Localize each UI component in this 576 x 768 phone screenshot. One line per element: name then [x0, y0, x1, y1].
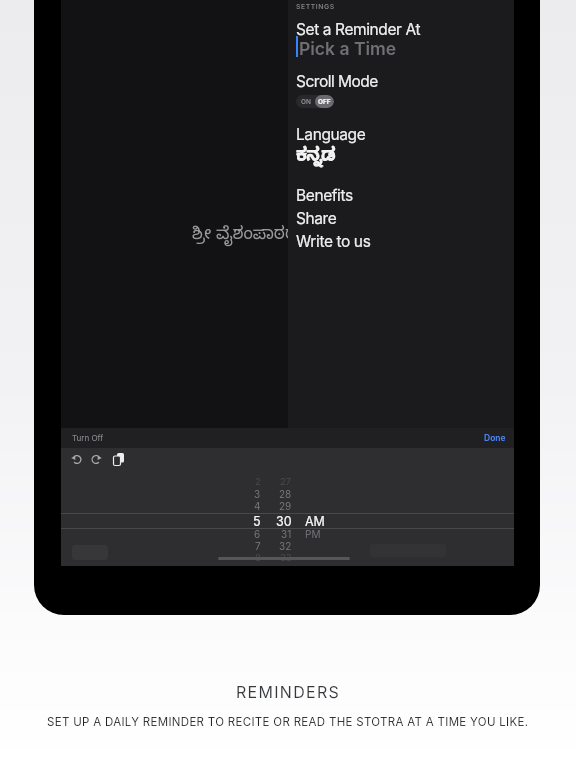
staticText: Set a Reminder At [296, 20, 421, 39]
button[interactable]: Pick a Time [299, 38, 397, 59]
staticText: 5 [253, 514, 261, 529]
staticText: 27 [280, 476, 292, 487]
staticText: 8 [255, 552, 261, 563]
staticText: ಕನ್ನಡ [296, 145, 335, 169]
staticText: Done [484, 433, 506, 443]
staticText: OFF [318, 98, 331, 106]
staticText: SETTINGS [296, 2, 335, 10]
staticText: 30 [276, 514, 292, 529]
staticText: 4 [254, 500, 261, 512]
staticText: SET UP A DAILY REMINDER TO RECITE OR REA… [47, 715, 529, 729]
button[interactable] [67, 451, 137, 471]
staticText: 2 [255, 476, 261, 487]
staticText: 33 [280, 552, 292, 563]
button[interactable]: Write to us [296, 232, 371, 251]
button[interactable]: Done [484, 428, 506, 448]
button[interactable]: Share [296, 209, 337, 228]
staticText: 7 [255, 540, 261, 552]
staticText: PM [305, 528, 321, 540]
staticText: 28 [279, 488, 292, 500]
staticText: 6 [254, 528, 261, 540]
staticText: 31 [281, 528, 292, 540]
staticText: Language [296, 125, 366, 144]
staticText: ON [301, 98, 311, 106]
staticText: ಕನ್ನಡ [296, 146, 335, 170]
staticText: REMINDERS [236, 682, 341, 701]
button[interactable]: Benefits [296, 186, 353, 205]
staticText: AM [305, 514, 325, 529]
staticText: ಕನ್ನಡ [297, 145, 336, 169]
staticText: Turn Off [72, 433, 104, 443]
button[interactable]: Turn Off [72, 428, 104, 448]
staticText: 32 [279, 540, 292, 552]
staticText: 29 [279, 500, 292, 512]
staticText: Scroll Mode [296, 72, 378, 91]
staticText: 3 [254, 488, 261, 500]
staticText: ಶ್ರೀ ವೈಶಂಪಾಠರ [192, 225, 288, 248]
button[interactable]: ON [296, 95, 334, 108]
